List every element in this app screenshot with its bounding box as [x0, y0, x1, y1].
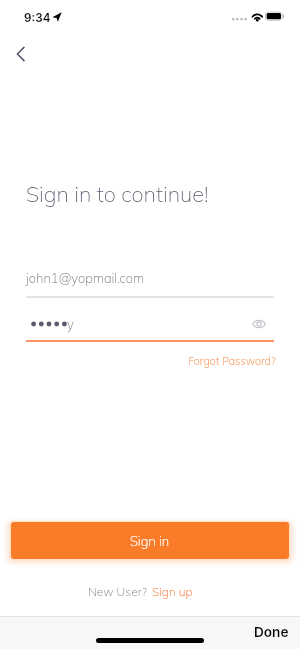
button[interactable]: Forgot Password?	[185, 352, 279, 370]
staticText: Forgot Password?	[188, 354, 276, 368]
button[interactable]: Sign in	[11, 522, 289, 559]
staticText: john1@yopmail.com	[26, 270, 145, 286]
staticText: Sign in to continue!	[26, 180, 209, 207]
button[interactable]: Show password	[246, 311, 272, 337]
staticText: y	[67, 316, 74, 332]
staticText: 9:34	[24, 11, 51, 25]
button[interactable]: Sign up	[152, 584, 193, 599]
button[interactable]: Done	[242, 622, 300, 642]
staticText: Sign in	[130, 533, 170, 549]
button[interactable]: Back	[4, 37, 38, 71]
staticText: Sign up	[152, 584, 193, 599]
staticText: New User?	[88, 584, 147, 599]
staticText: Done	[254, 624, 289, 640]
